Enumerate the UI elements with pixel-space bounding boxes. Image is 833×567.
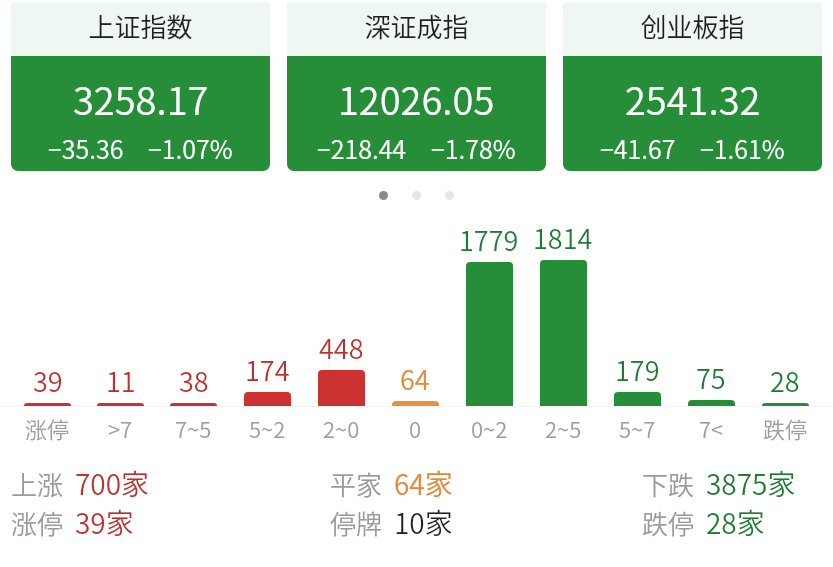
staticText: 涨停 bbox=[25, 412, 70, 444]
button[interactable]: 创业板指 bbox=[563, 2, 822, 171]
staticText: 2~0 bbox=[323, 412, 360, 444]
button[interactable]: 下跌 bbox=[642, 463, 796, 504]
button[interactable]: Page 3 bbox=[445, 191, 454, 200]
staticText: 64家 bbox=[394, 463, 453, 504]
staticText: 38 bbox=[179, 361, 209, 400]
staticText: 涨停 bbox=[11, 504, 64, 542]
staticText: >7 bbox=[108, 412, 133, 444]
staticText: 10家 bbox=[394, 502, 453, 543]
staticText: 7< bbox=[699, 412, 724, 444]
staticText: 3258.17 bbox=[73, 71, 209, 126]
staticText: 停牌 bbox=[330, 504, 383, 542]
staticText: 3875家 bbox=[706, 463, 796, 504]
staticText: 0~2 bbox=[471, 412, 508, 444]
staticText: 700家 bbox=[75, 463, 150, 504]
staticText: 179 bbox=[615, 350, 660, 389]
staticText: 75 bbox=[696, 358, 726, 397]
staticText: 174 bbox=[245, 350, 290, 389]
staticText: −41.67 bbox=[600, 130, 676, 166]
staticText: 11 bbox=[106, 361, 136, 400]
staticText: 5~2 bbox=[249, 412, 286, 444]
staticText: 跌停 bbox=[763, 412, 808, 444]
staticText: 深证成指 bbox=[364, 7, 469, 45]
staticText: 2~5 bbox=[545, 412, 582, 444]
staticText: −1.61% bbox=[700, 130, 785, 166]
staticText: 39 bbox=[33, 361, 63, 400]
button[interactable]: 上涨 bbox=[11, 463, 150, 504]
staticText: 64 bbox=[400, 359, 430, 398]
staticText: 上证指数 bbox=[88, 7, 193, 45]
button[interactable]: Page 2 bbox=[412, 191, 421, 200]
button[interactable]: 跌停 bbox=[642, 502, 765, 543]
staticText: 2541.32 bbox=[625, 71, 761, 126]
button[interactable]: 涨停 bbox=[11, 502, 134, 543]
staticText: 28家 bbox=[706, 502, 765, 543]
staticText: 39家 bbox=[75, 502, 134, 543]
staticText: −35.36 bbox=[48, 130, 124, 166]
staticText: 1814 bbox=[533, 218, 593, 257]
staticText: 跌停 bbox=[642, 504, 695, 542]
staticText: 5~7 bbox=[619, 412, 656, 444]
button[interactable]: 停牌 bbox=[330, 502, 453, 543]
staticText: 448 bbox=[319, 328, 364, 367]
staticText: 28 bbox=[770, 361, 800, 400]
staticText: 下跌 bbox=[642, 465, 695, 503]
staticText: 平家 bbox=[330, 465, 383, 503]
button[interactable]: Page 1 bbox=[379, 191, 388, 200]
staticText: −218.44 bbox=[317, 130, 407, 166]
button[interactable]: 上证指数 bbox=[11, 2, 270, 171]
staticText: 0 bbox=[409, 412, 422, 444]
button[interactable]: 深证成指 bbox=[287, 2, 546, 171]
button[interactable]: 平家 bbox=[330, 463, 453, 504]
staticText: −1.07% bbox=[148, 130, 233, 166]
staticText: 上涨 bbox=[11, 465, 64, 503]
staticText: −1.78% bbox=[431, 130, 516, 166]
staticText: 12026.05 bbox=[338, 71, 495, 126]
staticText: 7~5 bbox=[175, 412, 212, 444]
staticText: 创业板指 bbox=[640, 7, 745, 45]
staticText: 1779 bbox=[459, 220, 519, 259]
